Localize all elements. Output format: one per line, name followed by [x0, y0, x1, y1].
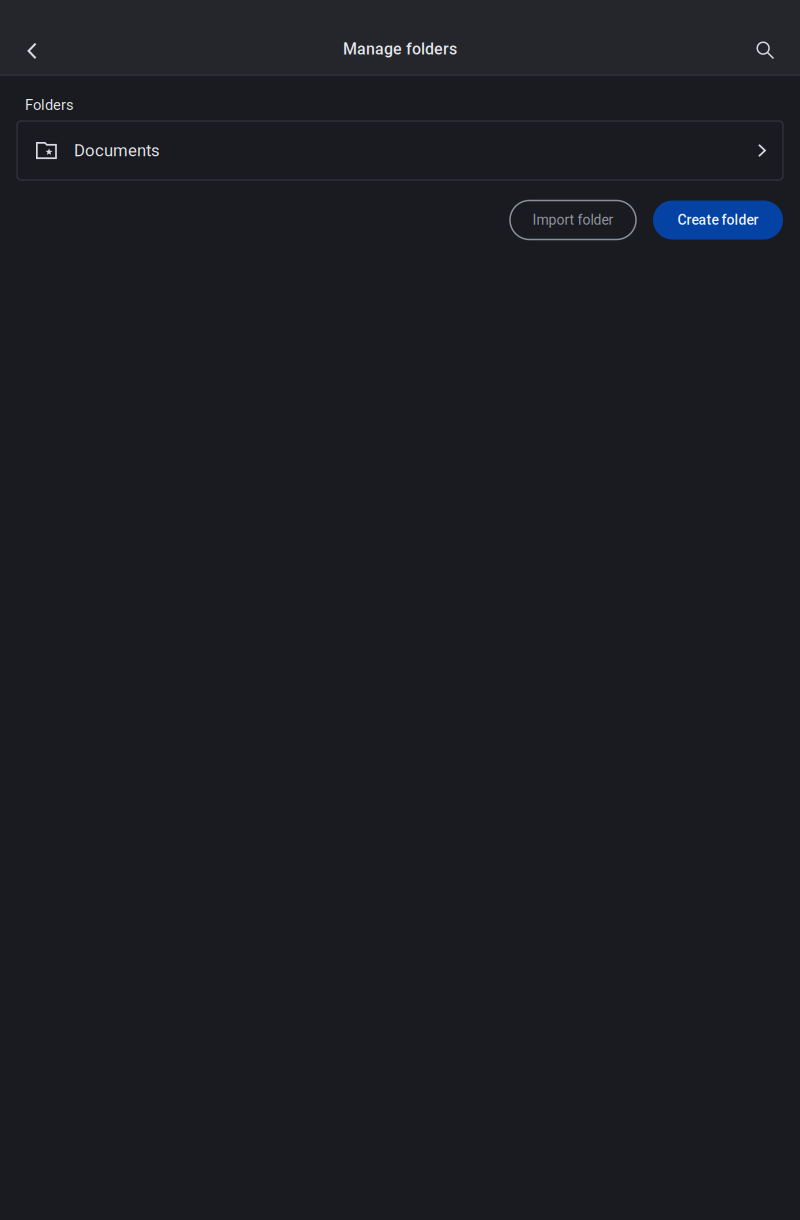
- button[interactable]: Import folder: [510, 200, 636, 239]
- button[interactable]: Search: [728, 24, 800, 74]
- staticText: Create folder: [677, 212, 758, 228]
- staticText: Import folder: [532, 212, 613, 228]
- button[interactable]: Create folder: [653, 200, 783, 239]
- button[interactable]: Back: [0, 24, 62, 74]
- staticText: Documents: [74, 141, 160, 160]
- staticText: Manage folders: [343, 40, 457, 58]
- staticText: Folders: [25, 96, 74, 114]
- button[interactable]: Documents: [17, 121, 783, 180]
